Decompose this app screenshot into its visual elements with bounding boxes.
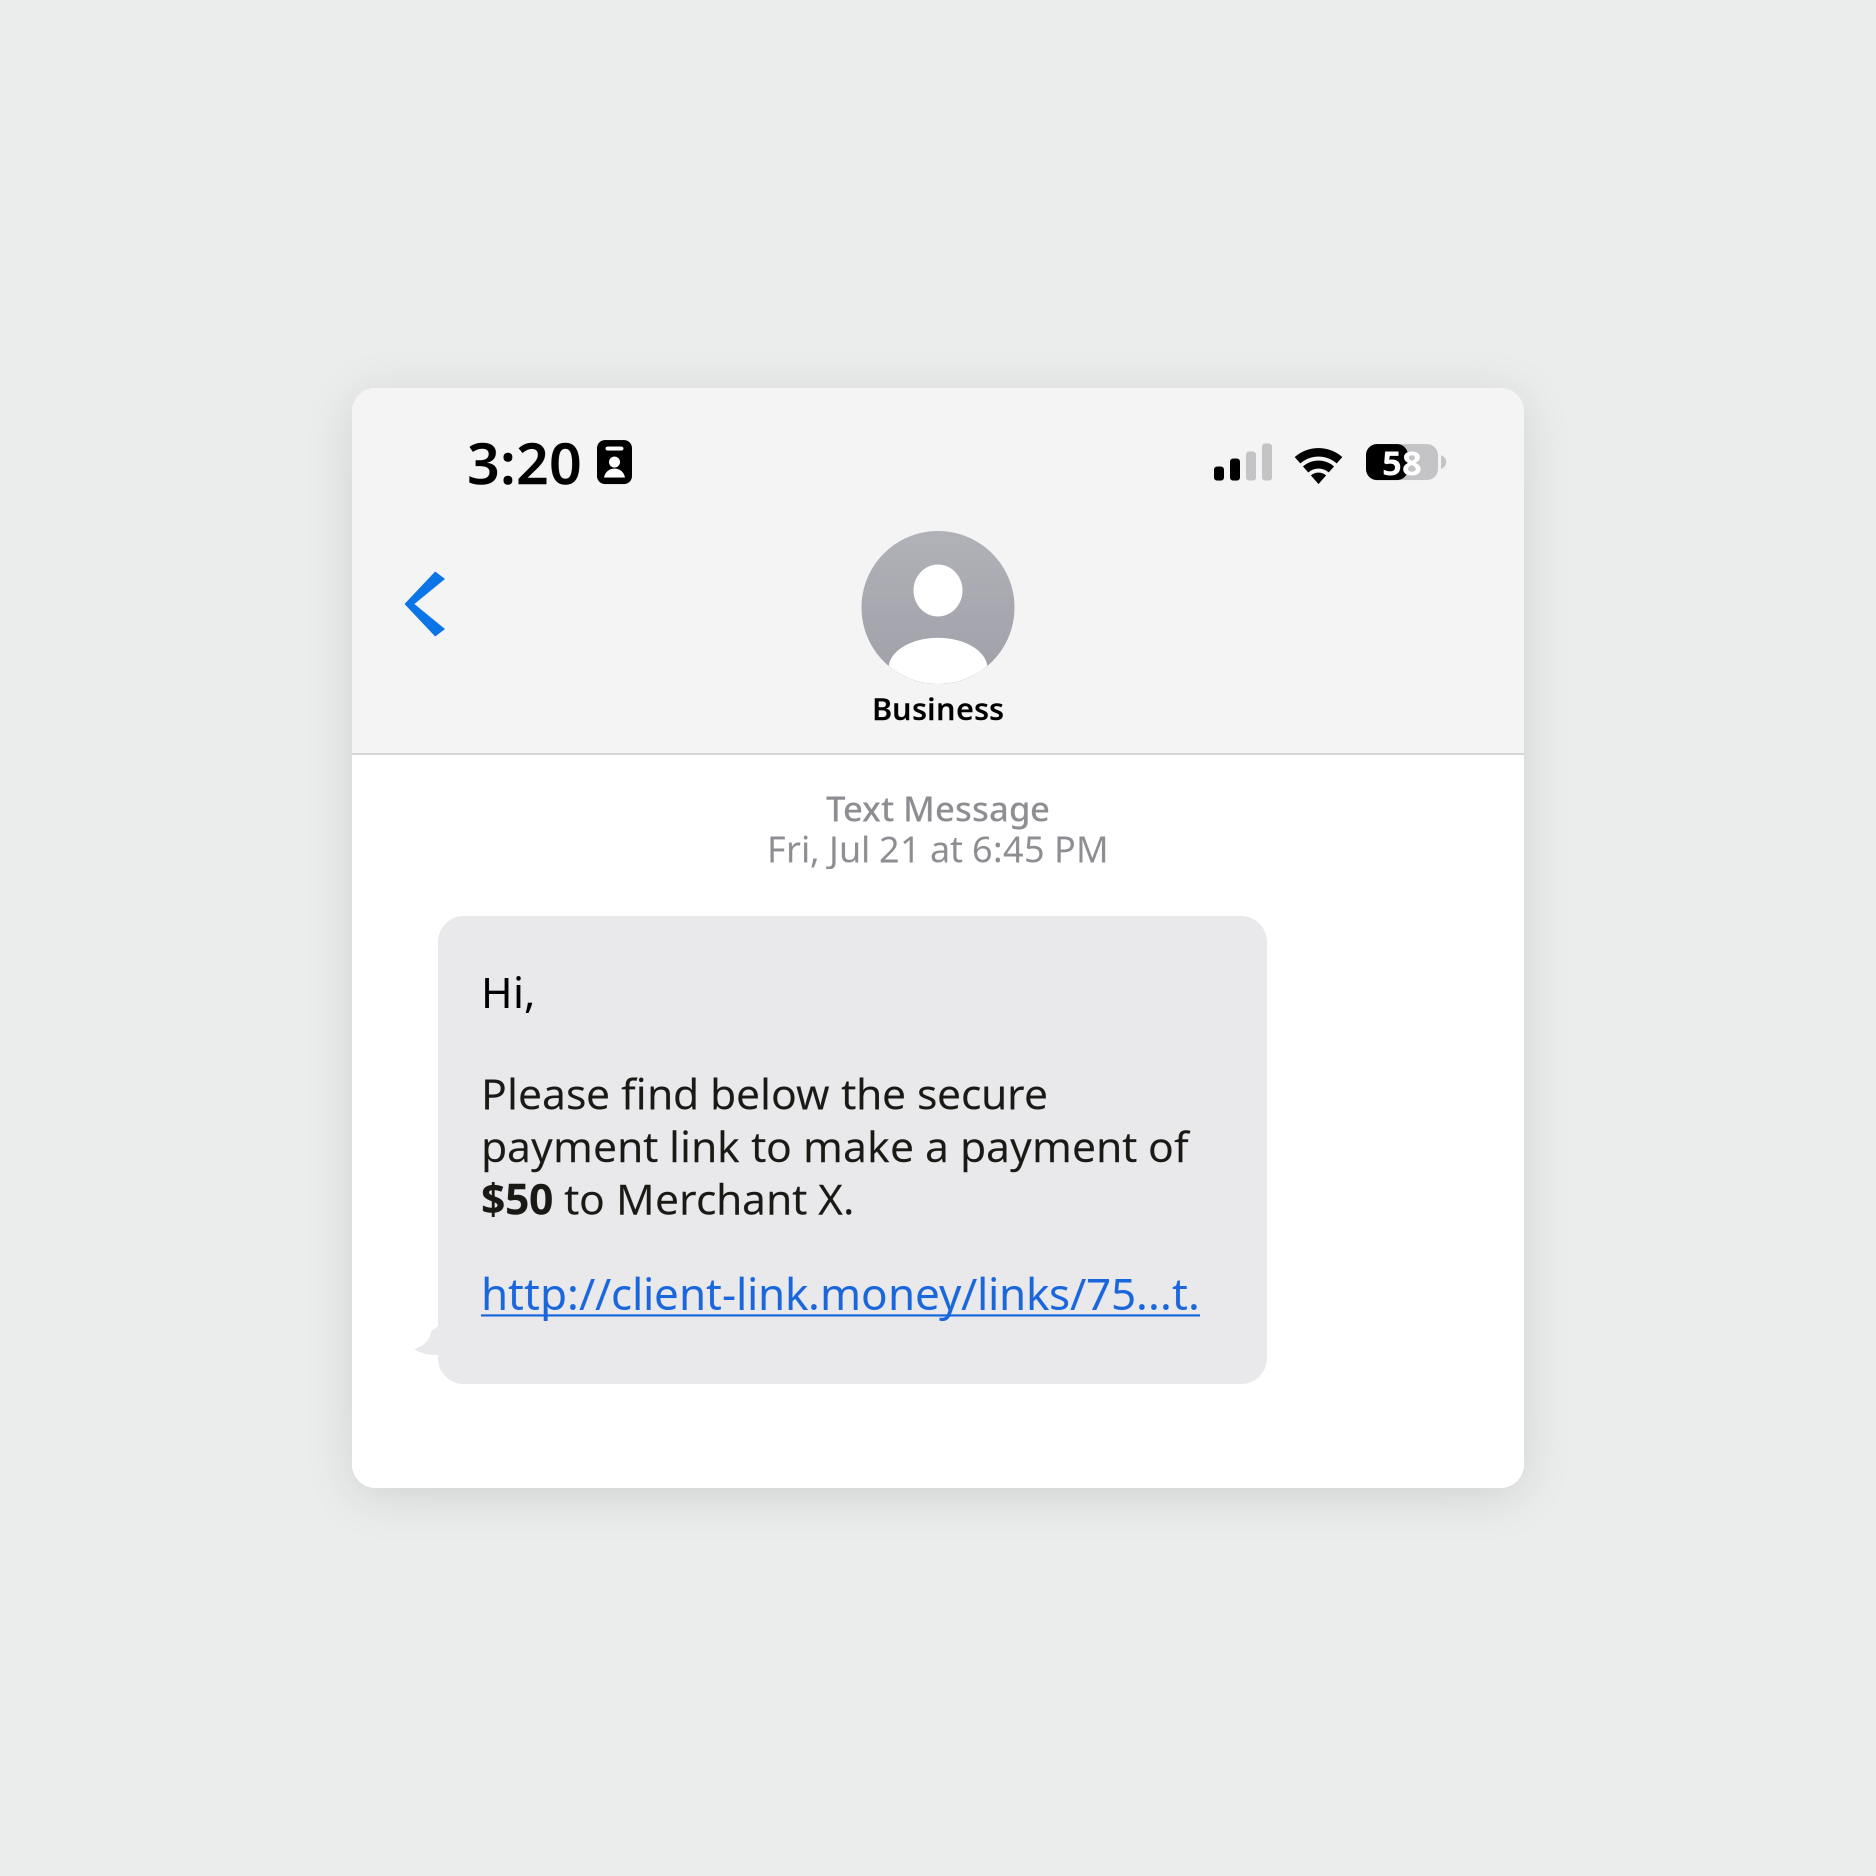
staticText: Business [872,688,1004,729]
staticText: Text Message [826,785,1050,831]
staticText: Please find below the secure payment lin… [481,1065,1189,1227]
button[interactable]: Back [352,547,478,661]
staticText: 58 [1382,439,1422,485]
staticText: Fri, Jul 21 at 6:45 PM [767,825,1109,872]
staticText: Hi, [481,963,535,1020]
staticText: 3:20 [467,424,582,500]
button[interactable]: Business [861,531,1014,729]
button[interactable]: http://client-link.money/links/75...t. [481,1264,1200,1322]
staticText: http://client-link.money/links/75...t. [481,1264,1200,1322]
